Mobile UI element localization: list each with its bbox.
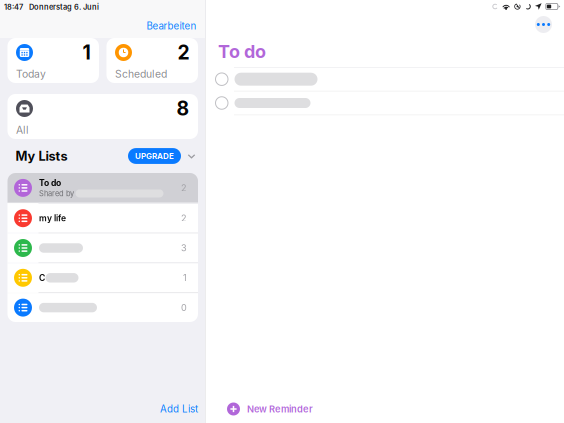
button[interactable]: 3: [7, 233, 198, 262]
staticText: Donnerstag 6. Juni: [29, 3, 99, 11]
button[interactable]: More options: [535, 16, 552, 33]
button[interactable]: C: [7, 262, 198, 292]
button[interactable]: To do: [7, 173, 198, 203]
staticText: 0: [181, 302, 187, 313]
staticText: my life: [39, 213, 66, 223]
staticText: Shared by: [39, 189, 74, 198]
staticText: To do: [218, 41, 266, 62]
staticText: 2: [181, 183, 187, 193]
staticText: Scheduled: [115, 68, 167, 80]
staticText: 3: [181, 243, 187, 253]
button[interactable]: 2: [106, 38, 198, 83]
staticText: Bearbeiten: [146, 20, 196, 32]
staticText: 2: [177, 41, 189, 64]
staticText: 2: [181, 213, 187, 224]
button[interactable]: Bearbeiten: [140, 17, 205, 35]
button[interactable]: my life: [7, 203, 198, 233]
button[interactable]: 8: [7, 94, 198, 139]
staticText: 1: [82, 41, 90, 64]
staticText: UPGRADE: [135, 151, 174, 161]
staticText: 18:47: [4, 3, 23, 11]
button[interactable]: Collapse My Lists: [185, 151, 198, 160]
staticText: 8: [176, 97, 189, 120]
button[interactable]: New Reminder: [227, 398, 313, 419]
staticText: My Lists: [15, 148, 67, 163]
staticText: All: [16, 124, 29, 136]
staticText: Today: [16, 68, 46, 80]
button[interactable]: 1: [7, 38, 99, 83]
staticText: New Reminder: [247, 403, 313, 414]
staticText: 1: [183, 272, 187, 283]
button[interactable]: 0: [7, 292, 198, 322]
staticText: C: [39, 273, 45, 283]
button[interactable]: UPGRADE: [128, 148, 181, 164]
staticText: To do: [39, 178, 61, 188]
staticText: Add List: [160, 403, 198, 415]
button[interactable]: Add List: [154, 398, 198, 420]
